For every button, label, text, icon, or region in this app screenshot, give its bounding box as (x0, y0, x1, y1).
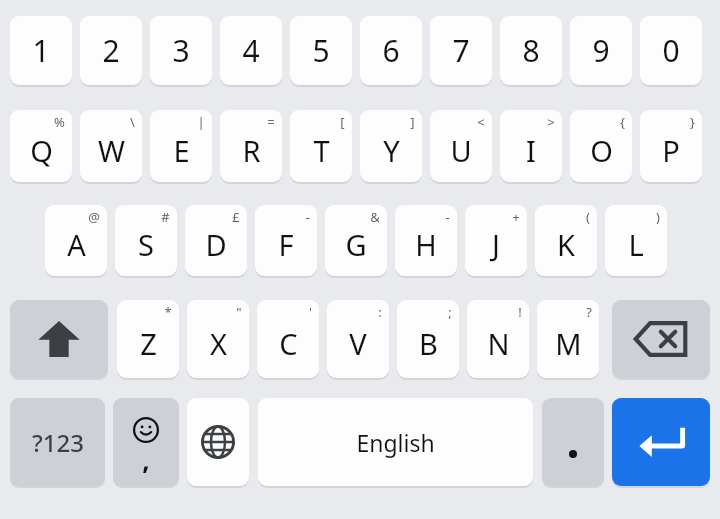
button[interactable]: H (395, 205, 457, 276)
staticText: English (356, 427, 435, 458)
button[interactable]: 4 (220, 16, 282, 85)
staticText: : (378, 303, 382, 321)
button[interactable]: T (290, 110, 352, 182)
staticText: ! (518, 303, 522, 321)
button[interactable]: Period (542, 398, 604, 486)
staticText: N (487, 324, 510, 363)
staticText: 5 (312, 30, 330, 71)
button[interactable]: A (45, 205, 107, 276)
staticText: X (210, 324, 227, 363)
staticText: M (555, 324, 582, 363)
staticText: Z (140, 324, 157, 363)
staticText: R (242, 131, 261, 170)
button[interactable]: I (500, 110, 562, 182)
staticText: I (526, 131, 536, 170)
button[interactable]: Emoji and comma (113, 398, 179, 486)
button[interactable]: U (430, 110, 492, 182)
button[interactable]: 2 (80, 16, 142, 85)
button[interactable]: D (185, 205, 247, 276)
button[interactable]: Z (117, 300, 179, 378)
button[interactable]: G (325, 205, 387, 276)
staticText: 2 (102, 30, 120, 71)
staticText: S (138, 225, 154, 264)
staticText: 1 (32, 30, 50, 71)
staticText: = (267, 113, 275, 131)
button[interactable]: English (258, 398, 533, 486)
staticText: ] (410, 113, 415, 131)
staticText: Q (30, 131, 53, 170)
button[interactable]: X (187, 300, 249, 378)
staticText: < (477, 113, 485, 131)
staticText: " (236, 303, 242, 321)
button[interactable]: Change language (187, 398, 249, 486)
staticText: ; (448, 303, 452, 321)
button[interactable]: Shift (10, 300, 108, 378)
staticText: W (98, 131, 125, 170)
staticText: B (419, 324, 438, 363)
staticText: 6 (382, 30, 400, 71)
staticText: ' (309, 303, 312, 321)
staticText: T (313, 131, 330, 170)
button[interactable]: Y (360, 110, 422, 182)
button[interactable]: L (605, 205, 667, 276)
staticText: Y (383, 131, 400, 170)
button[interactable]: R (220, 110, 282, 182)
button[interactable]: J (465, 205, 527, 276)
staticText: C (279, 324, 298, 363)
button[interactable]: 7 (430, 16, 492, 85)
staticText: L (628, 225, 644, 264)
staticText: U (450, 131, 472, 170)
button[interactable]: Enter (612, 398, 710, 486)
staticText: V (349, 324, 367, 363)
staticText: G (345, 225, 367, 264)
button[interactable]: 5 (290, 16, 352, 85)
staticText: - (445, 208, 450, 226)
button[interactable]: V (327, 300, 389, 378)
staticText: & (370, 208, 380, 226)
staticText: A (67, 225, 86, 264)
staticText: P (662, 131, 680, 170)
button[interactable]: B (397, 300, 459, 378)
staticText: 8 (522, 30, 540, 71)
staticText: - (305, 208, 310, 226)
button[interactable]: K (535, 205, 597, 276)
staticText: > (547, 113, 555, 131)
staticText: + (512, 208, 520, 226)
staticText: H (415, 225, 437, 264)
staticText: K (557, 225, 575, 264)
staticText: 3 (172, 30, 190, 71)
staticText: ?123 (32, 426, 84, 459)
staticText: , (142, 442, 150, 477)
button[interactable]: S (115, 205, 177, 276)
staticText: £ (232, 208, 240, 226)
button[interactable]: 8 (500, 16, 562, 85)
staticText: ( (586, 208, 590, 226)
button[interactable]: 0 (640, 16, 702, 85)
button[interactable]: 3 (150, 16, 212, 85)
button[interactable]: 6 (360, 16, 422, 85)
button[interactable]: F (255, 205, 317, 276)
button[interactable]: W (80, 110, 142, 182)
staticText: % (54, 113, 65, 131)
button[interactable]: Backspace (612, 300, 710, 378)
button[interactable]: 1 (10, 16, 72, 85)
staticText: 7 (452, 30, 470, 71)
staticText: { (620, 113, 625, 131)
staticText: } (690, 113, 695, 131)
staticText: D (205, 225, 227, 264)
staticText: 4 (242, 30, 260, 71)
button[interactable]: E (150, 110, 212, 182)
staticText: \ (130, 113, 135, 131)
button[interactable]: O (570, 110, 632, 182)
button[interactable]: P (640, 110, 702, 182)
button[interactable]: 9 (570, 16, 632, 85)
button[interactable]: N (467, 300, 529, 378)
button[interactable]: C (257, 300, 319, 378)
staticText: F (278, 225, 294, 264)
staticText: * (164, 303, 172, 321)
button[interactable]: Symbols (10, 398, 105, 486)
staticText: ? (586, 303, 592, 321)
button[interactable]: Q (10, 110, 72, 182)
staticText: # (161, 208, 170, 226)
button[interactable]: M (537, 300, 599, 378)
